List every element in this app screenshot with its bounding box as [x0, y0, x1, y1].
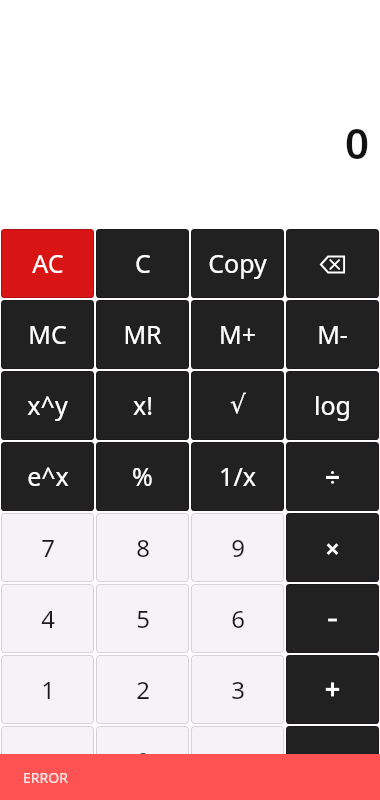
staticText: 0 — [136, 744, 150, 777]
button[interactable]: . — [1, 726, 94, 795]
button[interactable]: 1/x — [191, 442, 284, 511]
staticText: 1/x — [219, 459, 256, 493]
staticText: 9 — [231, 531, 245, 564]
button[interactable]: % — [96, 442, 189, 511]
staticText: x! — [133, 388, 153, 422]
staticText: 2 — [136, 673, 150, 706]
staticText: 1 — [41, 673, 55, 706]
button[interactable]: M- — [286, 300, 379, 369]
button[interactable]: Multiply — [286, 513, 379, 582]
staticText: 6 — [231, 602, 245, 635]
staticText: % — [132, 459, 153, 493]
staticText: . — [44, 744, 51, 777]
button[interactable]: 4 — [1, 584, 94, 653]
button[interactable]: Divide — [286, 442, 379, 511]
button[interactable]: 7 — [1, 513, 94, 582]
button[interactable]: 0 — [96, 726, 189, 795]
button[interactable]: Plus — [286, 655, 379, 724]
staticText: Copy — [208, 246, 267, 280]
staticText: 5 — [136, 602, 150, 635]
button[interactable]: 5 — [96, 584, 189, 653]
staticText: e^x — [27, 459, 69, 493]
staticText: MR — [123, 317, 162, 351]
staticText: √ — [230, 390, 246, 419]
staticText: 0 — [345, 114, 370, 171]
staticText: log — [314, 388, 351, 422]
button[interactable]: x^y — [1, 371, 94, 440]
button[interactable]: Equals — [191, 726, 284, 795]
staticText: 8 — [136, 531, 150, 564]
button[interactable]: x! — [96, 371, 189, 440]
button[interactable]: log — [286, 371, 379, 440]
button[interactable]: 1 — [1, 655, 94, 724]
button[interactable]: √ — [191, 371, 284, 440]
staticText: C — [135, 246, 151, 280]
staticText: 4 — [41, 602, 55, 635]
button[interactable]: Copy — [191, 229, 284, 298]
button[interactable]: ERROR — [0, 754, 380, 800]
staticText: M+ — [219, 317, 256, 351]
button[interactable]: Minus — [286, 584, 379, 653]
staticText: MC — [28, 317, 67, 351]
staticText: 7 — [41, 531, 55, 564]
staticText: M- — [317, 317, 348, 351]
button[interactable]: Backspace — [286, 229, 379, 298]
button[interactable]: MR — [96, 300, 189, 369]
button[interactable]: 8 — [96, 513, 189, 582]
button[interactable]: Equals — [286, 726, 379, 795]
button[interactable]: 6 — [191, 584, 284, 653]
button[interactable]: C — [96, 229, 189, 298]
button[interactable]: 3 — [191, 655, 284, 724]
button[interactable]: 2 — [96, 655, 189, 724]
button[interactable]: 9 — [191, 513, 284, 582]
staticText: 3 — [231, 673, 245, 706]
staticText: AC — [32, 246, 64, 280]
button[interactable]: M+ — [191, 300, 284, 369]
staticText: ERROR — [23, 768, 68, 787]
button[interactable]: MC — [1, 300, 94, 369]
button[interactable]: e^x — [1, 442, 94, 511]
staticText: x^y — [27, 388, 68, 422]
button[interactable]: AC — [1, 229, 94, 298]
